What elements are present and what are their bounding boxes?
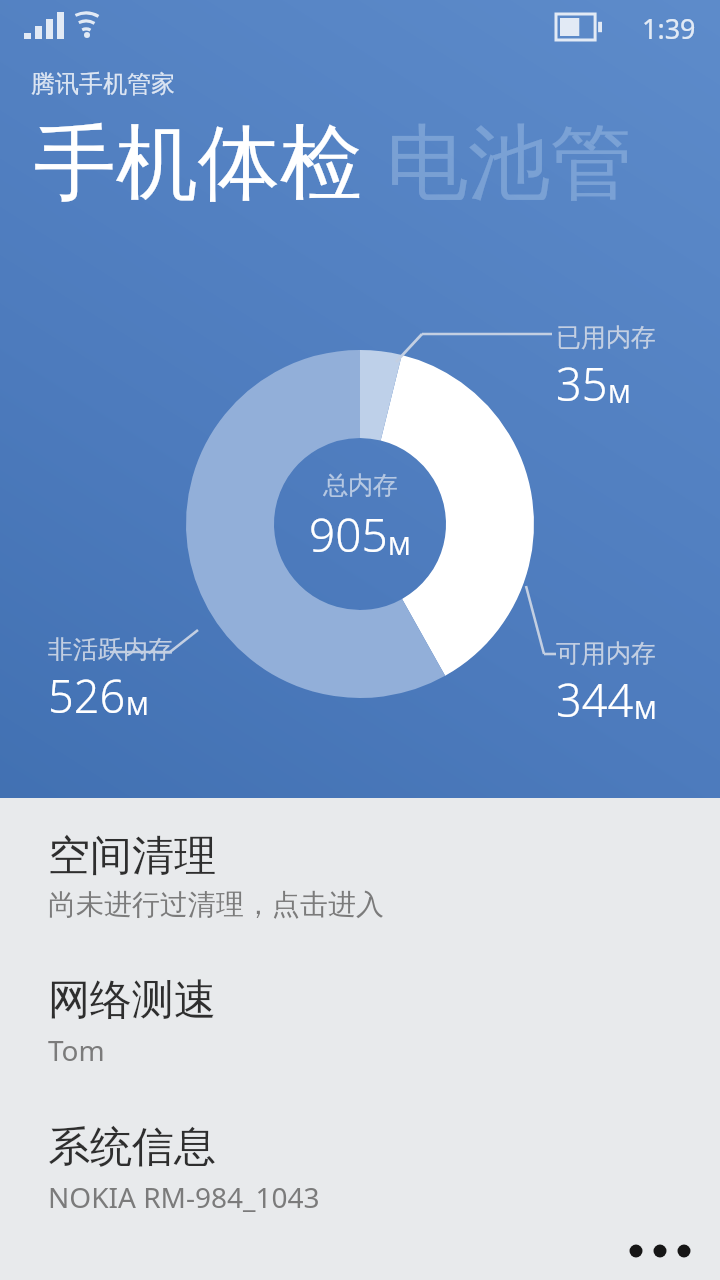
staticText: 已用内存	[556, 322, 656, 353]
staticText: Tom	[48, 1031, 105, 1069]
staticText: 526	[48, 665, 126, 726]
staticText: M	[634, 692, 657, 726]
staticText: 总内存	[323, 470, 398, 501]
staticText: NOKIA RM-984_1043	[48, 1178, 320, 1216]
button[interactable]: 网络测速	[0, 974, 720, 1069]
staticText: M	[126, 688, 149, 722]
button[interactable]: More options	[600, 1222, 720, 1280]
staticText: 35	[556, 353, 608, 414]
staticText: 905	[309, 503, 388, 566]
staticText: 系统信息	[48, 1121, 216, 1174]
staticText: 电池管	[386, 112, 632, 215]
staticText: 可用内存	[556, 638, 656, 669]
staticText: 尚未进行过清理，点击进入	[48, 887, 384, 922]
button[interactable]: 系统信息	[0, 1121, 720, 1216]
staticText: 344	[556, 669, 634, 730]
staticText: 1:39	[642, 10, 696, 47]
button[interactable]: 空间清理	[0, 830, 720, 922]
staticText: 手机体检	[34, 112, 362, 215]
staticText: M	[608, 376, 631, 410]
staticText: 腾讯手机管家	[31, 69, 175, 99]
staticText: 网络测速	[48, 974, 216, 1027]
staticText: 空间清理	[48, 830, 216, 883]
staticText: 非活跃内存	[48, 634, 173, 665]
staticText: M	[388, 528, 411, 562]
